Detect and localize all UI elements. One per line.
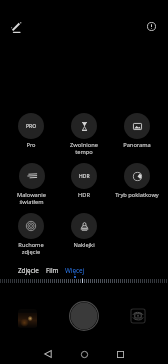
button[interactable]: Gallery [18,309,37,328]
button[interactable]: Recents [110,344,130,364]
staticText: Pro [26,141,36,149]
button[interactable]: Switch camera [130,308,146,324]
button[interactable]: Info [140,15,162,37]
staticText: Panorama [123,141,151,149]
button[interactable]: Shutter [69,301,99,331]
staticText: Naklejki [73,241,95,249]
button[interactable]: HDR [54,163,114,205]
staticText: Ruchome zdjęcie [18,241,44,255]
staticText: Tryb poklatkowy [115,191,159,199]
button[interactable]: Ruchome zdjęcie [1,213,61,255]
button[interactable]: Więcej [58,266,92,281]
button[interactable]: AI photo [5,16,27,38]
staticText: Więcej [65,266,85,275]
button[interactable]: Tryb poklatkowy [107,163,167,205]
button[interactable]: Panorama [107,113,167,155]
staticText: Zdjęcie [18,266,39,275]
button[interactable]: Zdjęcie [11,266,45,281]
button[interactable]: Film [35,266,69,281]
staticText: HDR [79,173,90,180]
staticText: HDR [78,191,90,199]
staticText: Zwolnione tempo [70,141,98,155]
staticText: Malowanie światłem [17,191,46,205]
button[interactable]: Naklejki [54,213,114,255]
button[interactable]: Home [74,344,94,364]
staticText: Film [46,266,59,275]
button[interactable]: PRO [1,113,61,155]
button[interactable]: Back [38,344,58,364]
button[interactable]: Zwolnione tempo [54,113,114,155]
button[interactable]: Malowanie światłem [1,163,61,205]
staticText: PRO [26,123,37,130]
